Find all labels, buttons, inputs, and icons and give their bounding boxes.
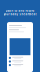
staticText: Listen to and record <box>5 9 34 12</box>
staticText: your baby's heartbeat <box>3 12 36 16</box>
